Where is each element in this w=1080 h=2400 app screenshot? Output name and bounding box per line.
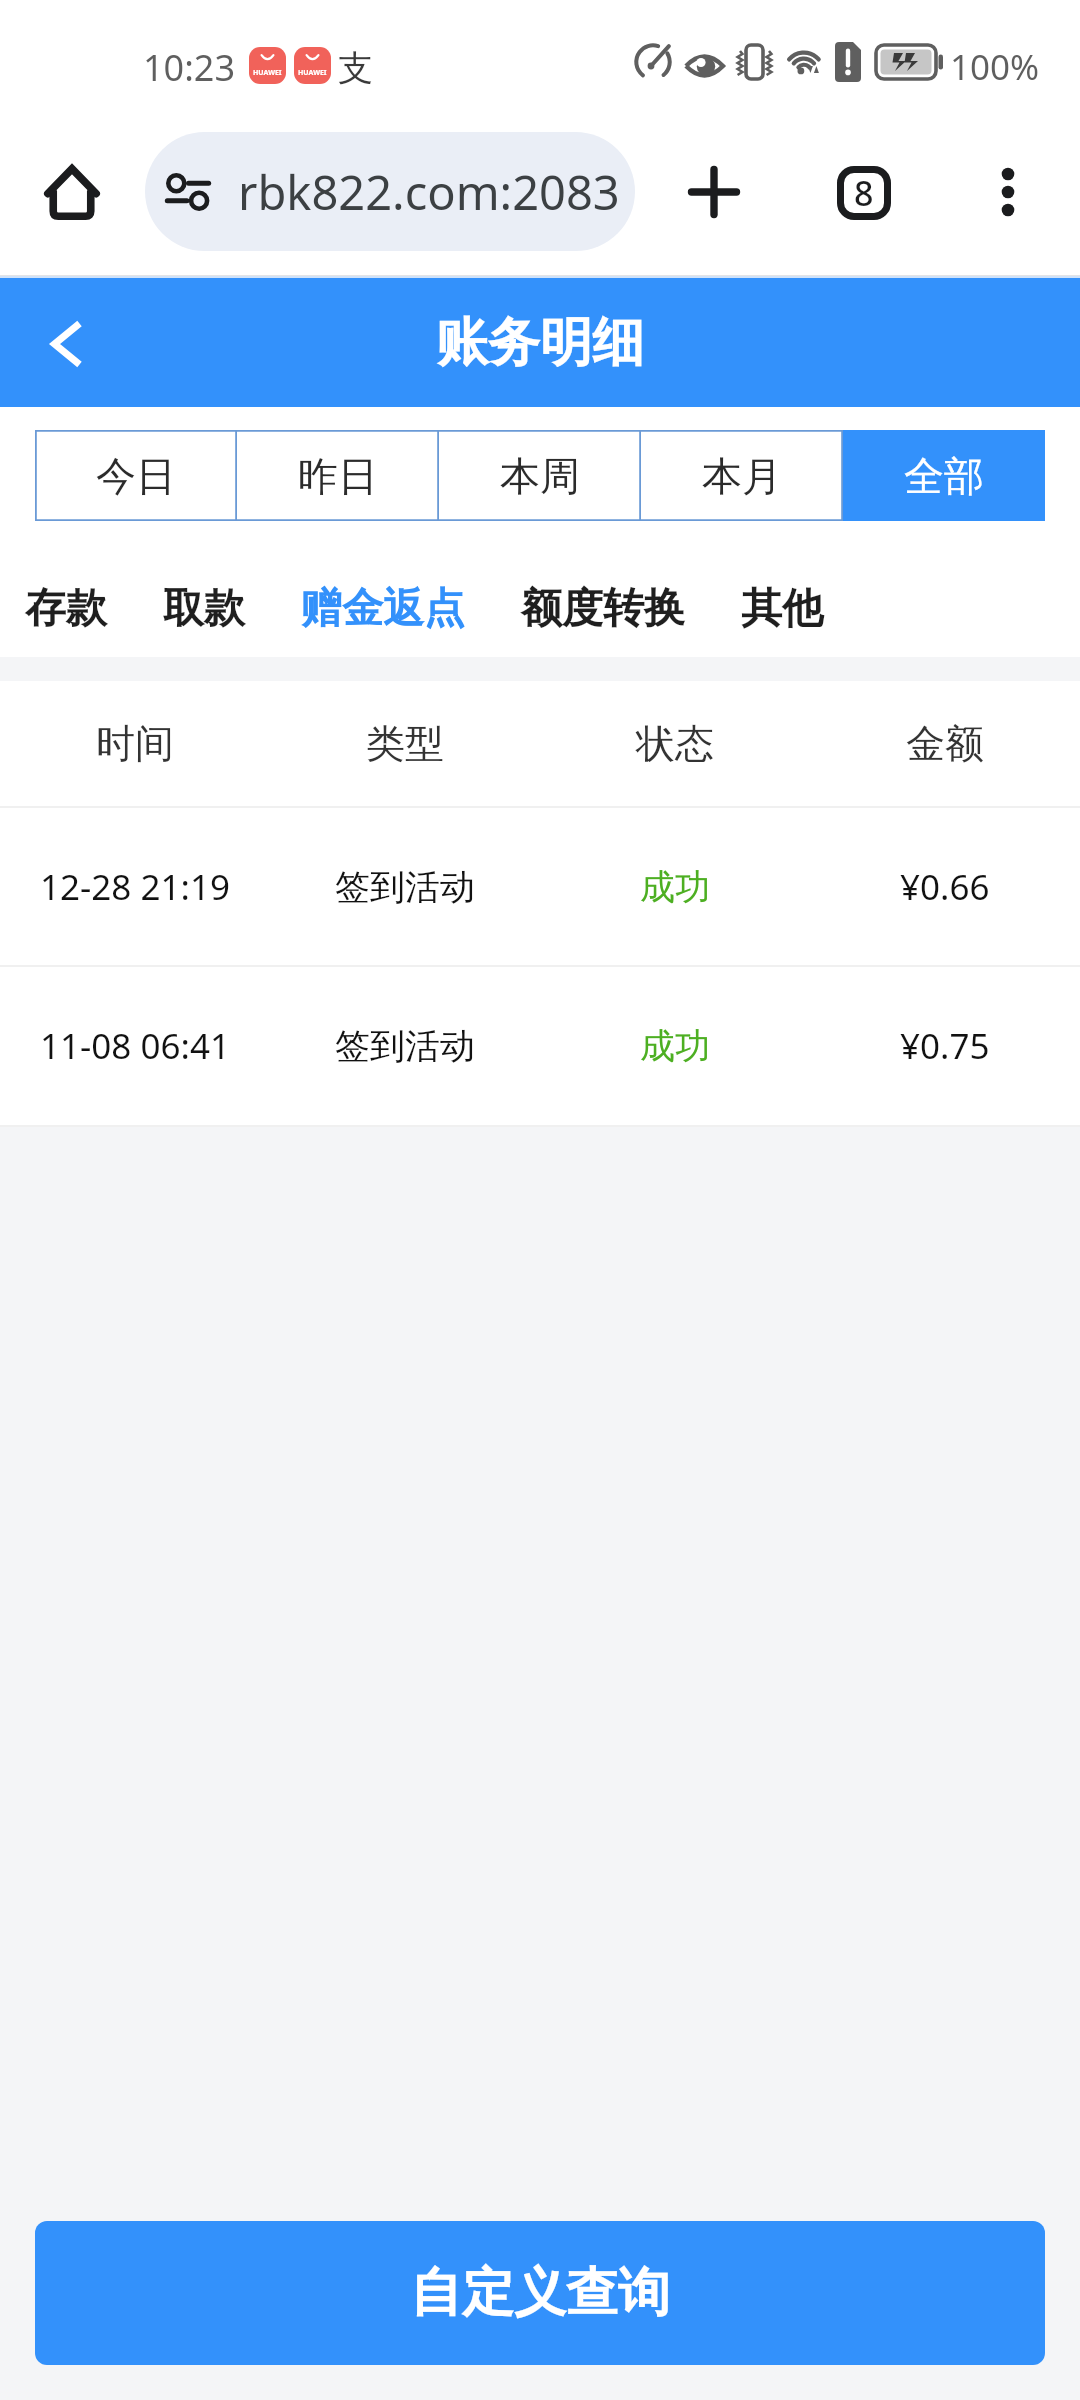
staticText: 本月 bbox=[702, 451, 782, 501]
staticText: 类型 bbox=[366, 719, 444, 768]
staticText: 账务明细 bbox=[436, 310, 644, 376]
button[interactable]: 11-08 06:41 bbox=[0, 967, 1080, 1125]
button[interactable]: 额度转换 bbox=[517, 565, 689, 653]
staticText: 10:23 bbox=[143, 43, 236, 92]
button[interactable]: 自定义查询 bbox=[35, 2221, 1045, 2365]
staticText: 昨日 bbox=[298, 451, 378, 501]
button[interactable]: 取款 bbox=[159, 565, 249, 653]
button[interactable]: 赠金返点 bbox=[297, 565, 469, 653]
button[interactable]: 今日 bbox=[35, 430, 237, 521]
button[interactable]: Home bbox=[28, 148, 116, 236]
staticText: 今日 bbox=[96, 451, 176, 501]
button[interactable]: 昨日 bbox=[237, 430, 439, 521]
staticText: 状态 bbox=[636, 719, 714, 768]
staticText: 支 bbox=[338, 46, 373, 90]
button[interactable]: 本周 bbox=[439, 430, 641, 521]
button[interactable]: Tabs bbox=[820, 149, 908, 237]
staticText: HUAWEI bbox=[253, 68, 282, 78]
button[interactable]: 存款 bbox=[21, 565, 111, 653]
staticText: ¥0.75 bbox=[900, 1022, 990, 1070]
button[interactable]: 本月 bbox=[641, 430, 843, 521]
button[interactable]: rbk822.com:2083 bbox=[145, 132, 635, 251]
staticText: 自定义查询 bbox=[410, 2260, 670, 2326]
staticText: 取款 bbox=[163, 583, 245, 635]
staticText: 签到活动 bbox=[335, 865, 475, 909]
staticText: 本周 bbox=[500, 451, 580, 501]
staticText: 赠金返点 bbox=[301, 583, 465, 635]
staticText: 100% bbox=[950, 43, 1040, 87]
button[interactable]: 其他 bbox=[737, 565, 827, 653]
staticText: 8 bbox=[854, 170, 874, 216]
button[interactable]: More options bbox=[964, 148, 1052, 236]
staticText: 12-28 21:19 bbox=[40, 863, 230, 911]
staticText: 成功 bbox=[640, 1024, 710, 1068]
staticText: 额度转换 bbox=[521, 583, 685, 635]
button[interactable]: Back bbox=[27, 304, 107, 384]
staticText: ¥0.66 bbox=[900, 863, 990, 911]
staticText: 成功 bbox=[640, 865, 710, 909]
button[interactable]: 12-28 21:19 bbox=[0, 808, 1080, 965]
button[interactable]: New tab bbox=[670, 148, 758, 236]
staticText: 存款 bbox=[25, 583, 107, 635]
staticText: 11-08 06:41 bbox=[40, 1022, 230, 1070]
staticText: 其他 bbox=[741, 583, 823, 635]
staticText: 签到活动 bbox=[335, 1024, 475, 1068]
button[interactable]: 全部 bbox=[843, 430, 1045, 521]
staticText: 时间 bbox=[96, 719, 174, 768]
staticText: HUAWEI bbox=[298, 68, 327, 78]
staticText: 全部 bbox=[904, 451, 984, 501]
staticText: 金额 bbox=[906, 719, 984, 768]
staticText: rbk822.com:2083 bbox=[238, 160, 620, 224]
